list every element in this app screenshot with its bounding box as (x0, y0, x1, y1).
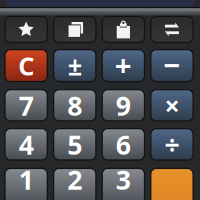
button[interactable]: 8 (54, 90, 96, 121)
staticText: 8 (67, 88, 82, 123)
button[interactable]: × (151, 90, 193, 121)
staticText: 6 (116, 127, 131, 162)
staticText: ± (68, 49, 82, 82)
staticText: 3 (116, 162, 131, 197)
button[interactable]: 3 (102, 168, 144, 200)
button[interactable]: − (151, 50, 193, 82)
staticText: 5 (67, 127, 82, 162)
staticText: ÷ (164, 127, 179, 162)
button[interactable]: Paste (102, 16, 144, 42)
staticText: − (163, 45, 180, 84)
button[interactable]: 4 (5, 129, 47, 160)
button[interactable]: ± (54, 50, 96, 82)
staticText: 9 (116, 88, 131, 123)
button[interactable]: 5 (54, 129, 96, 160)
staticText: 7 (19, 88, 34, 123)
button[interactable]: 6 (102, 129, 144, 160)
staticText: 4 (19, 127, 34, 162)
button[interactable]: Equals (151, 168, 193, 200)
staticText: × (164, 88, 179, 123)
button[interactable]: Copy (54, 16, 96, 42)
button[interactable]: ÷ (151, 129, 193, 160)
button[interactable]: + (102, 50, 144, 82)
button[interactable]: 9 (102, 90, 144, 121)
button[interactable]: Swap (151, 16, 193, 42)
staticText: + (115, 45, 132, 84)
button[interactable]: 7 (5, 90, 47, 121)
staticText: 1 (19, 162, 34, 197)
button[interactable]: Favourites (5, 16, 47, 42)
staticText: C (18, 49, 34, 82)
button[interactable]: 2 (54, 168, 96, 200)
staticText: 2 (67, 162, 82, 197)
button[interactable]: 1 (5, 168, 47, 200)
button[interactable]: C (5, 50, 47, 82)
